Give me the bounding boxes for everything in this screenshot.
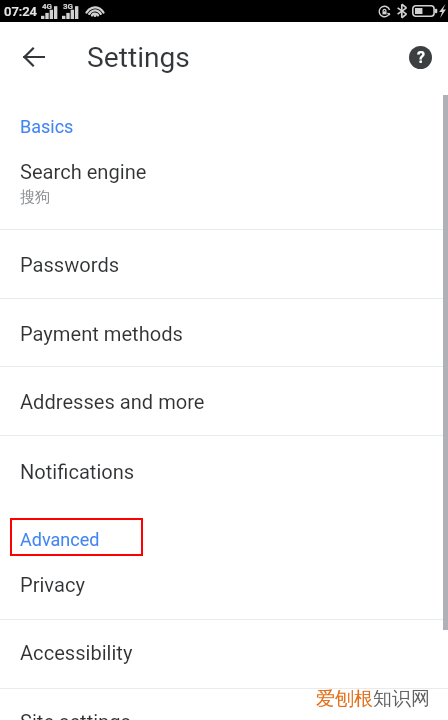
staticText: Advanced <box>20 529 100 550</box>
staticText: Notifications <box>20 460 135 484</box>
staticText: Privacy <box>20 573 85 597</box>
staticText: Search engine <box>20 160 147 184</box>
button[interactable]: Notifications <box>0 436 448 504</box>
staticText: 知识网 <box>373 687 430 711</box>
staticText: Payment methods <box>20 322 183 346</box>
button[interactable]: Search engine <box>0 143 448 229</box>
staticText: 4G <box>42 2 53 11</box>
staticText: 07:24 <box>4 4 38 19</box>
staticText: 3G <box>63 2 74 11</box>
staticText: Basics <box>20 116 74 137</box>
button[interactable]: Back <box>12 35 56 79</box>
staticText: Accessibility <box>20 641 133 665</box>
button[interactable]: Site settings <box>0 689 448 720</box>
staticText: ? <box>417 48 425 67</box>
button[interactable]: Help <box>402 39 438 75</box>
button[interactable]: Payment methods <box>0 299 448 367</box>
button[interactable]: Passwords <box>0 230 448 298</box>
staticText: Addresses and more <box>20 390 205 414</box>
button[interactable]: Addresses and more <box>0 367 448 435</box>
button[interactable]: Basics <box>12 107 82 145</box>
button[interactable]: Advanced <box>12 520 108 558</box>
staticText: Settings <box>87 41 190 74</box>
button[interactable]: Privacy <box>0 556 448 618</box>
staticText: Site settings <box>20 710 131 720</box>
staticText: Passwords <box>20 253 120 277</box>
staticText: 搜狗 <box>20 188 50 207</box>
button[interactable]: Accessibility <box>0 620 448 688</box>
staticText: 爱刨根 <box>316 687 373 711</box>
